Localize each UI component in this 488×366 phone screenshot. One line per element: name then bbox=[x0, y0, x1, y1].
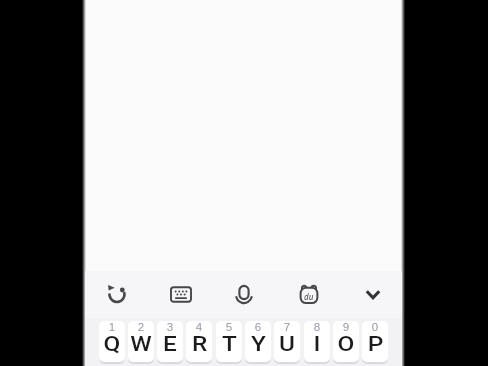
staticText: 7 bbox=[283, 322, 290, 333]
staticText: R bbox=[192, 332, 207, 354]
staticText: 5 bbox=[226, 322, 232, 333]
staticText: 1 bbox=[109, 322, 115, 333]
staticText: 3 bbox=[167, 322, 173, 333]
button[interactable]: 0 bbox=[362, 321, 388, 362]
staticText: 9 bbox=[342, 322, 349, 333]
staticText: W bbox=[130, 332, 152, 354]
button[interactable]: 5 bbox=[216, 321, 242, 362]
button[interactable]: 1 bbox=[99, 321, 125, 362]
button[interactable]: 9 bbox=[333, 321, 359, 362]
staticText: U bbox=[278, 332, 296, 354]
button[interactable] bbox=[222, 273, 266, 317]
button[interactable] bbox=[351, 273, 395, 317]
staticText: 4 bbox=[196, 322, 202, 333]
button[interactable] bbox=[95, 273, 139, 317]
button[interactable]: 6 bbox=[245, 321, 271, 362]
staticText: 2 bbox=[138, 322, 144, 333]
staticText: I bbox=[313, 332, 321, 354]
staticText: T bbox=[222, 332, 237, 354]
staticText: 6 bbox=[255, 322, 261, 333]
button[interactable]: 4 bbox=[186, 321, 212, 362]
staticText: 8 bbox=[313, 322, 320, 333]
button[interactable] bbox=[159, 273, 203, 317]
staticText: E bbox=[163, 332, 177, 354]
button[interactable]: 2 bbox=[128, 321, 154, 362]
button[interactable]: du bbox=[287, 273, 331, 317]
staticText: Y bbox=[251, 332, 266, 354]
staticText: P bbox=[368, 332, 383, 354]
button[interactable]: 7 bbox=[274, 321, 300, 362]
button[interactable]: 8 bbox=[304, 321, 330, 362]
button[interactable]: 3 bbox=[157, 321, 183, 362]
staticText: du bbox=[304, 291, 314, 302]
staticText: Q bbox=[103, 332, 121, 354]
staticText: 0 bbox=[371, 322, 378, 333]
staticText: O bbox=[337, 332, 355, 354]
